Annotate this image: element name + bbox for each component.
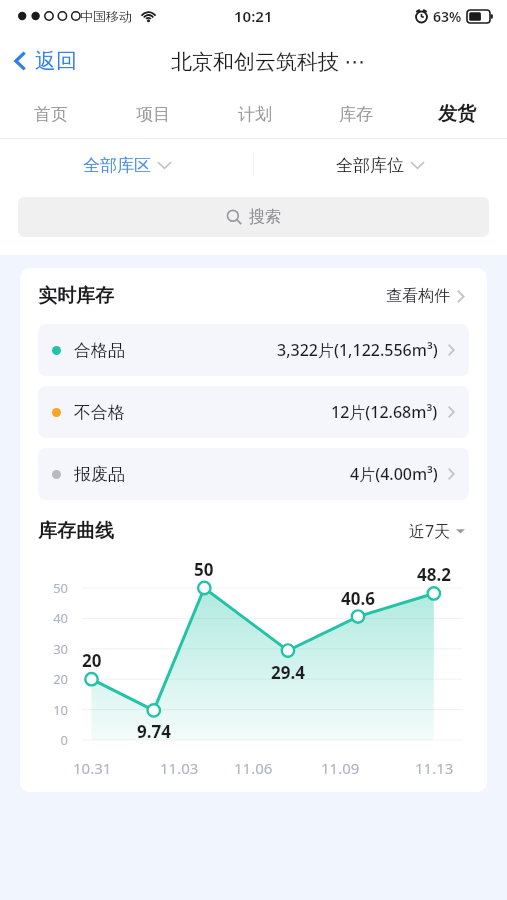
staticText: 12片(12.68m³) xyxy=(331,401,438,423)
staticText: 20 xyxy=(53,670,68,688)
staticText: 首页 xyxy=(34,104,68,125)
staticText: 10.31 xyxy=(73,758,112,778)
staticText: 3,322片(1,122.556m³) xyxy=(277,339,438,361)
staticText: 4片(4.00m³) xyxy=(350,463,438,485)
staticText: 9.74 xyxy=(137,720,171,743)
button[interactable]: 不合格 xyxy=(38,386,469,438)
staticText: 0 xyxy=(60,731,68,749)
staticText: 50 xyxy=(194,558,214,581)
staticText: 11.03 xyxy=(160,758,199,778)
staticText: 发货 xyxy=(438,102,476,126)
staticText: 计划 xyxy=(238,104,272,125)
button[interactable]: 全部库位 xyxy=(253,139,507,191)
button[interactable]: 计划 xyxy=(204,90,305,138)
staticText: 返回 xyxy=(35,48,77,74)
staticText: 30 xyxy=(53,640,68,658)
staticText: 48.2 xyxy=(417,563,451,586)
button[interactable]: 报废品 xyxy=(38,448,469,500)
staticText: 近7天 xyxy=(409,520,451,542)
staticText: 11.06 xyxy=(234,758,273,778)
staticText: 全部库位 xyxy=(336,155,404,176)
staticText: 10:21 xyxy=(234,6,273,26)
staticText: 库存曲线 xyxy=(38,519,114,543)
button[interactable]: 近7天 xyxy=(405,516,469,546)
staticText: 63% xyxy=(433,7,462,26)
button[interactable]: 搜索 xyxy=(18,197,489,237)
staticText: 40 xyxy=(53,609,68,627)
button[interactable]: 查看构件 xyxy=(382,282,469,310)
button[interactable]: 发货 xyxy=(406,90,507,138)
button[interactable]: 返回 xyxy=(0,40,89,82)
staticText: 11.09 xyxy=(321,758,360,778)
button[interactable]: 首页 xyxy=(0,90,102,138)
staticText: 中国移动 xyxy=(80,8,132,24)
staticText: 合格品 xyxy=(74,340,125,361)
staticText: 报废品 xyxy=(74,464,125,485)
staticText: 不合格 xyxy=(74,402,125,423)
staticText: 全部库区 xyxy=(83,155,151,176)
staticText: 40.6 xyxy=(341,587,375,610)
button[interactable]: 全部库区 xyxy=(0,139,253,191)
staticText: 29.4 xyxy=(271,661,305,684)
staticText: 北京和创云筑科技 ⋯ xyxy=(171,47,366,76)
staticText: 查看构件 xyxy=(386,286,450,306)
button[interactable]: 库存 xyxy=(305,90,406,138)
staticText: 50 xyxy=(53,579,68,597)
staticText: 库存 xyxy=(339,104,373,125)
button[interactable]: 合格品 xyxy=(38,324,469,376)
button[interactable]: 项目 xyxy=(102,90,204,138)
staticText: 项目 xyxy=(136,104,170,125)
staticText: 搜索 xyxy=(249,207,281,227)
staticText: 11.13 xyxy=(415,758,454,778)
staticText: 实时库存 xyxy=(38,284,114,308)
staticText: 10 xyxy=(53,701,68,719)
staticText: 20 xyxy=(82,649,102,672)
